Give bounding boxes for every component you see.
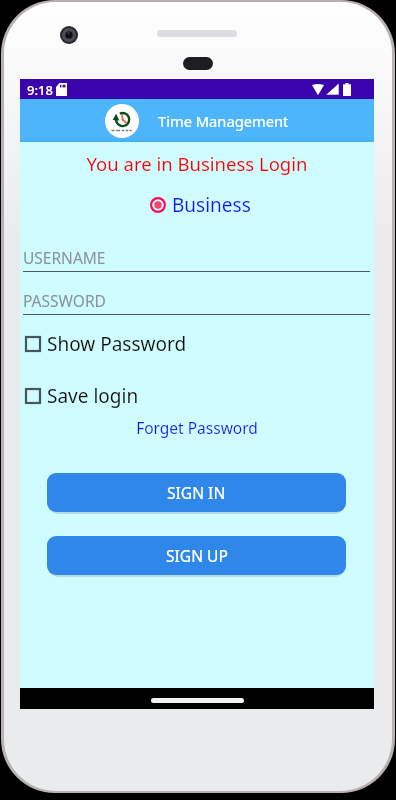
staticText: Business: [172, 192, 251, 218]
button[interactable]: SIGN UP: [47, 536, 346, 575]
button[interactable]: Business: [148, 190, 253, 220]
button[interactable]: Forget Password: [20, 417, 374, 438]
button[interactable]: SIGN IN: [47, 473, 346, 512]
staticText: Show Password: [47, 331, 187, 357]
staticText: You are in Business Login: [20, 151, 374, 176]
staticText: 9:18: [27, 81, 53, 99]
staticText: Time Management: [158, 111, 289, 131]
staticText: PASSWORD: [23, 290, 106, 311]
button[interactable]: App logo: [105, 104, 139, 138]
staticText: SIGN UP: [166, 545, 228, 566]
button[interactable]: Save login: [20, 378, 147, 414]
button[interactable]: Show Password: [20, 326, 195, 362]
staticText: SIGN IN: [167, 482, 226, 503]
staticText: Save login: [47, 383, 139, 409]
staticText: USERNAME: [23, 247, 106, 268]
